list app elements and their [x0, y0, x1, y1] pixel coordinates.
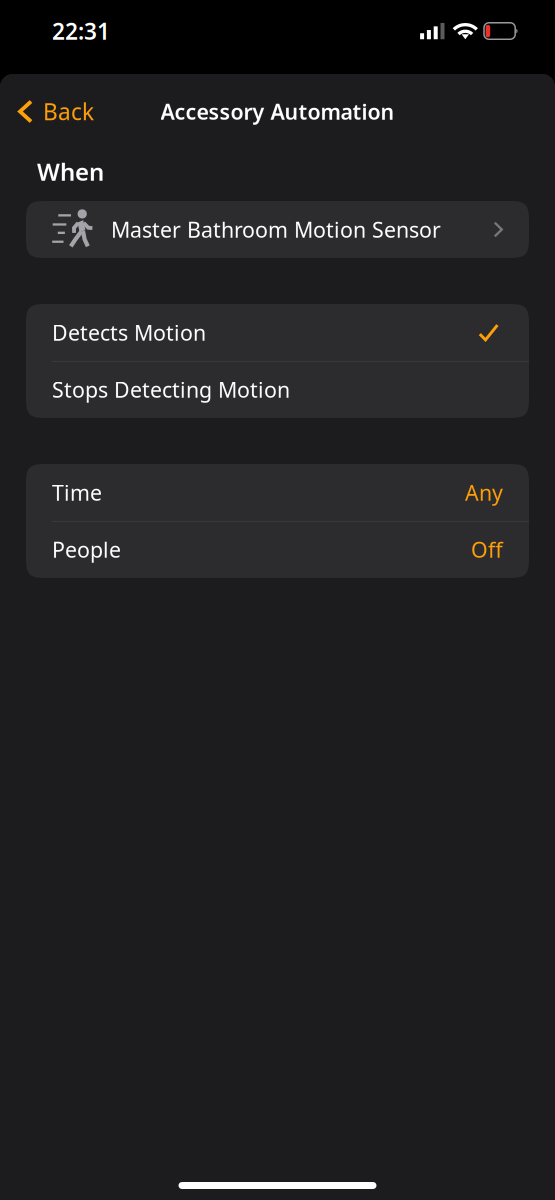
staticText: Off — [471, 535, 503, 564]
staticText: Back — [43, 96, 94, 126]
staticText: Stops Detecting Motion — [52, 375, 290, 404]
button[interactable]: Stops Detecting Motion — [26, 361, 529, 418]
staticText: Accessory Automation — [160, 97, 394, 126]
button[interactable]: Time — [26, 464, 529, 521]
staticText: 22:31 — [52, 16, 110, 46]
staticText: People — [52, 535, 121, 564]
button[interactable]: Detects Motion — [26, 304, 529, 361]
staticText: Time — [52, 478, 102, 507]
staticText: When — [37, 156, 104, 187]
staticText: Any — [465, 478, 503, 507]
button[interactable]: Back — [0, 89, 106, 133]
button[interactable]: People — [26, 521, 529, 578]
staticText: Detects Motion — [52, 318, 206, 347]
button[interactable]: Master Bathroom Motion Sensor — [26, 201, 529, 258]
staticText: Master Bathroom Motion Sensor — [111, 215, 441, 244]
